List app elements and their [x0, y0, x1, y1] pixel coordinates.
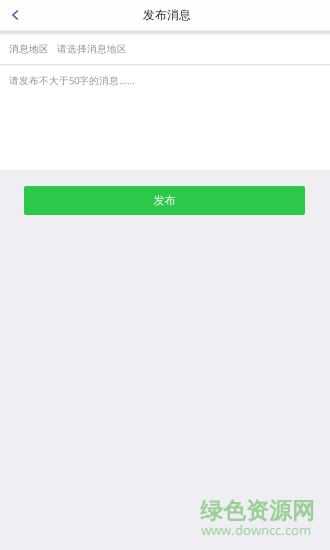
staticText: 发布消息: [143, 8, 191, 22]
staticText: 发布: [153, 193, 175, 207]
button[interactable]: Back: [0, 0, 40, 30]
button[interactable]: 消息地区: [0, 34, 330, 64]
button[interactable]: 请发布不大于50字的消息……: [0, 65, 330, 95]
staticText: 消息地区: [9, 43, 49, 55]
staticText: 请选择消息地区: [57, 43, 127, 55]
button[interactable]: 发布: [24, 186, 305, 215]
staticText: 请发布不大于50字的消息……: [9, 74, 135, 87]
staticText: www.downcc.com: [201, 521, 311, 539]
staticText: 绿色资源网: [200, 497, 315, 525]
